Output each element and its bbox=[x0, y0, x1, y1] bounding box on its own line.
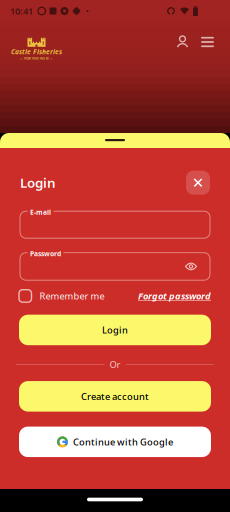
staticText: Remember me bbox=[39, 290, 104, 302]
button[interactable]: Login bbox=[19, 315, 211, 345]
staticText: 10:41 bbox=[10, 5, 33, 17]
button[interactable]: Forgot password bbox=[138, 290, 211, 302]
button[interactable]: Continue with Google bbox=[19, 427, 211, 457]
button[interactable]: Password bbox=[20, 253, 210, 280]
staticText: — FRESH FOOD FASTER — bbox=[20, 57, 53, 60]
button[interactable]: Show password bbox=[185, 262, 210, 270]
staticText: Login bbox=[102, 324, 128, 336]
staticText: Login bbox=[20, 174, 56, 191]
button[interactable]: Remember me bbox=[19, 290, 104, 302]
button[interactable]: Account bbox=[172, 31, 193, 52]
staticText: Continue with Google bbox=[73, 436, 173, 448]
button[interactable]: Close bbox=[186, 171, 210, 195]
button[interactable]: Menu bbox=[197, 33, 218, 51]
staticText: Password bbox=[30, 249, 61, 258]
staticText: E-mail bbox=[30, 208, 51, 217]
button[interactable]: E-mail bbox=[20, 211, 210, 238]
button[interactable]: Create account bbox=[19, 381, 211, 412]
staticText: Or bbox=[109, 358, 120, 371]
staticText: Castle Fisheries bbox=[11, 47, 62, 56]
staticText: Forgot password bbox=[138, 290, 211, 302]
staticText: Create account bbox=[81, 390, 149, 402]
